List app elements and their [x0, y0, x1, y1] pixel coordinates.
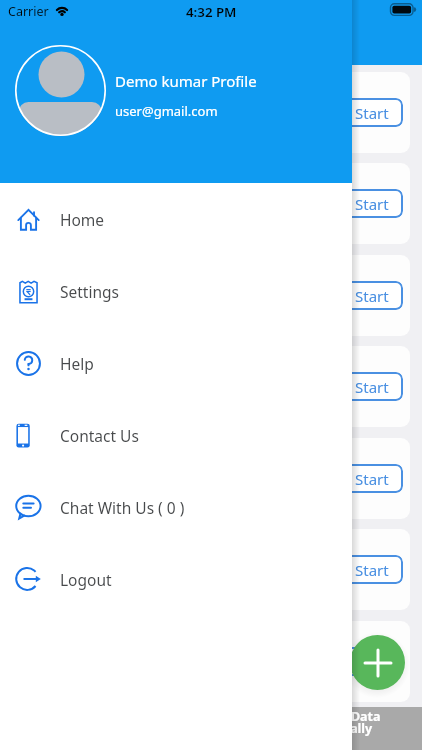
button[interactable] [350, 635, 405, 690]
button[interactable]: Start [341, 464, 403, 493]
button[interactable]: Chat With Us ( 0 ) [0, 471, 352, 543]
staticText: Chat With Us ( 0 ) [60, 497, 185, 518]
staticText: Start [355, 377, 389, 397]
staticText: Home [60, 209, 105, 230]
button[interactable]: Settings [0, 255, 352, 327]
staticText: Help [60, 353, 94, 374]
staticText: Logout [60, 569, 112, 590]
staticText: Start [355, 469, 389, 489]
button[interactable]: Start [341, 98, 403, 127]
staticText: Start [355, 560, 389, 580]
staticText: Start [355, 103, 389, 123]
button[interactable]: Logout [0, 543, 352, 615]
staticText: Start [355, 652, 389, 672]
staticText: Start [355, 194, 389, 214]
button[interactable]: Start [341, 189, 403, 218]
staticText: Contact Us [60, 425, 139, 446]
staticText: Start [355, 286, 389, 306]
button[interactable]: Home [0, 183, 352, 255]
button[interactable]: Contact Us [0, 399, 352, 471]
button[interactable]: Start [341, 555, 403, 584]
staticText: Settings [60, 281, 119, 302]
staticText: Press Sync Button To Upload All Data [152, 708, 381, 725]
button[interactable]: Start [341, 647, 403, 676]
staticText: 4:32 PM [186, 3, 237, 21]
button[interactable]: Help [0, 327, 352, 399]
staticText: Carrier [8, 3, 49, 20]
button[interactable]: Start [341, 281, 403, 310]
button[interactable]: Start [341, 372, 403, 401]
staticText: Demo kumar Profile [115, 71, 257, 91]
staticText: To The Server Automatically [198, 720, 373, 737]
staticText: user@gmail.com [115, 102, 218, 120]
